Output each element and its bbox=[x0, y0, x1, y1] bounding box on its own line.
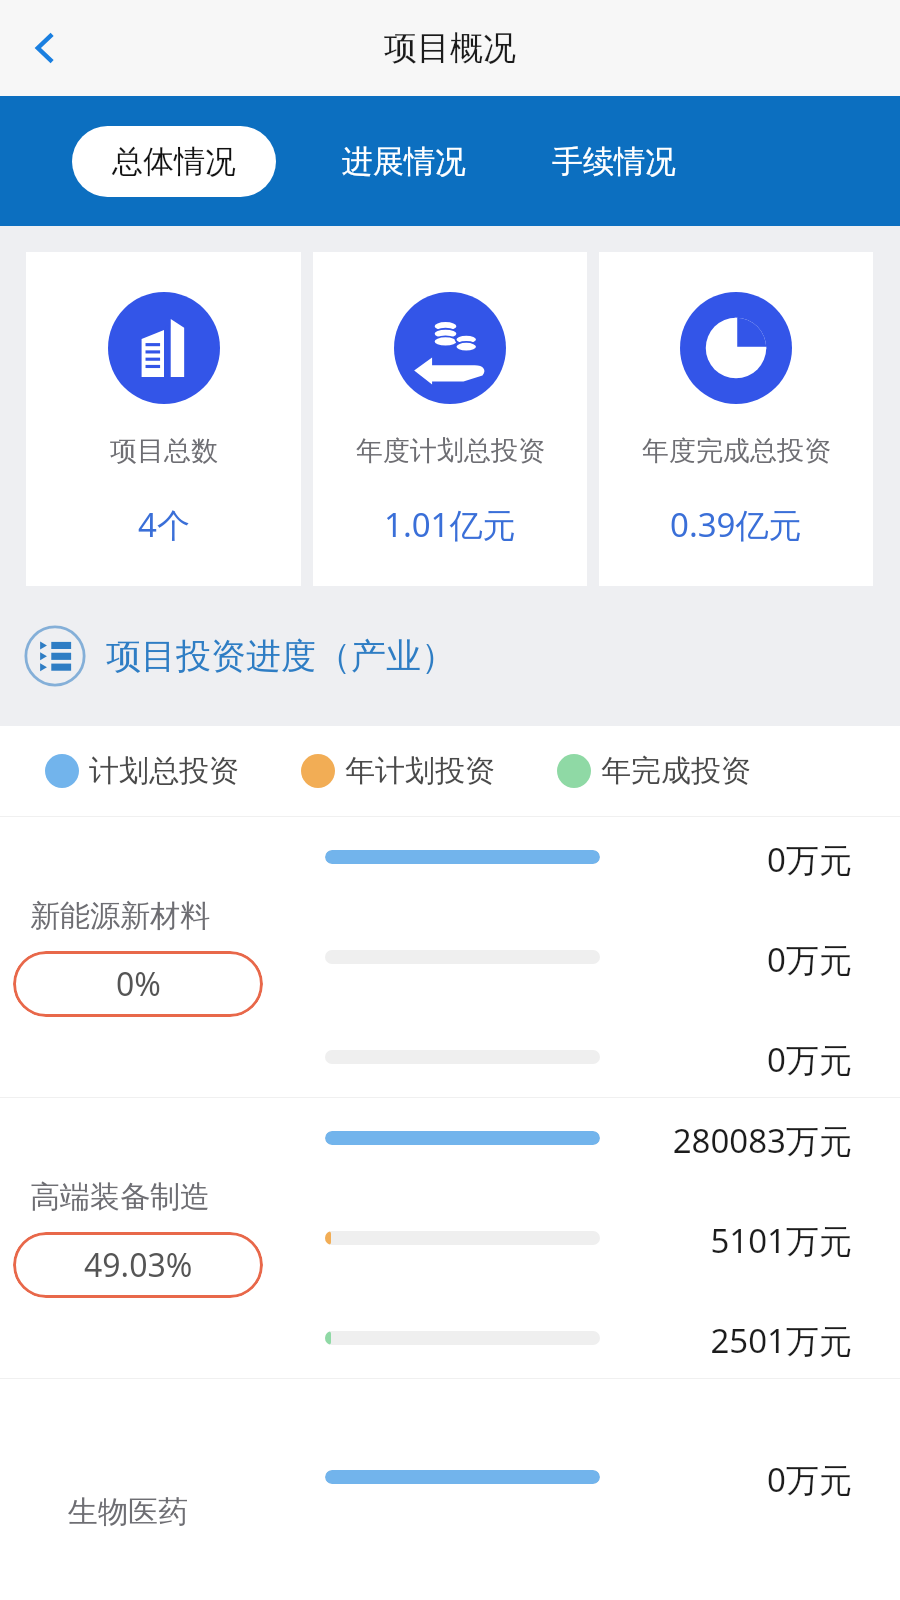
staticText: 5101万元 bbox=[710, 1218, 852, 1258]
staticText: 0万元 bbox=[767, 837, 852, 877]
staticText: 进展情况 bbox=[342, 142, 466, 181]
button[interactable]: 进展情况 bbox=[334, 126, 474, 197]
staticText: 项目总数 bbox=[110, 434, 218, 468]
button[interactable]: Back bbox=[12, 14, 80, 82]
button[interactable]: 高端装备制造 bbox=[0, 1098, 900, 1378]
staticText: 49.03% bbox=[84, 1243, 193, 1287]
staticText: 新能源新材料 bbox=[30, 897, 210, 935]
staticText: 生物医药 bbox=[68, 1493, 188, 1531]
button[interactable]: 生物医药 bbox=[0, 1379, 900, 1539]
staticText: 计划总投资 bbox=[89, 752, 239, 790]
staticText: 年完成投资 bbox=[601, 752, 751, 790]
staticText: 0% bbox=[116, 962, 161, 1006]
staticText: 1.01亿元 bbox=[384, 502, 516, 547]
staticText: 年度计划总投资 bbox=[356, 434, 545, 468]
staticText: 0.39亿元 bbox=[670, 502, 802, 547]
staticText: 280083万元 bbox=[672, 1118, 852, 1158]
staticText: 项目概况 bbox=[384, 27, 516, 69]
staticText: 0万元 bbox=[767, 937, 852, 977]
button[interactable]: 年度完成总投资 bbox=[599, 252, 873, 586]
button[interactable]: 总体情况 bbox=[72, 126, 276, 197]
staticText: 年计划投资 bbox=[345, 752, 495, 790]
staticText: 高端装备制造 bbox=[30, 1178, 210, 1216]
button[interactable]: 手续情况 bbox=[544, 126, 684, 197]
staticText: 4个 bbox=[138, 502, 190, 547]
staticText: 总体情况 bbox=[112, 142, 236, 181]
staticText: 年度完成总投资 bbox=[642, 434, 831, 468]
staticText: 0万元 bbox=[767, 1457, 852, 1497]
button[interactable]: 年度计划总投资 bbox=[313, 252, 587, 586]
staticText: 0万元 bbox=[767, 1037, 852, 1077]
button[interactable]: 新能源新材料 bbox=[0, 817, 900, 1097]
staticText: 手续情况 bbox=[552, 142, 676, 181]
button[interactable]: 项目总数 bbox=[26, 252, 301, 586]
staticText: 项目投资进度（产业） bbox=[106, 634, 456, 678]
staticText: 2501万元 bbox=[710, 1318, 852, 1358]
